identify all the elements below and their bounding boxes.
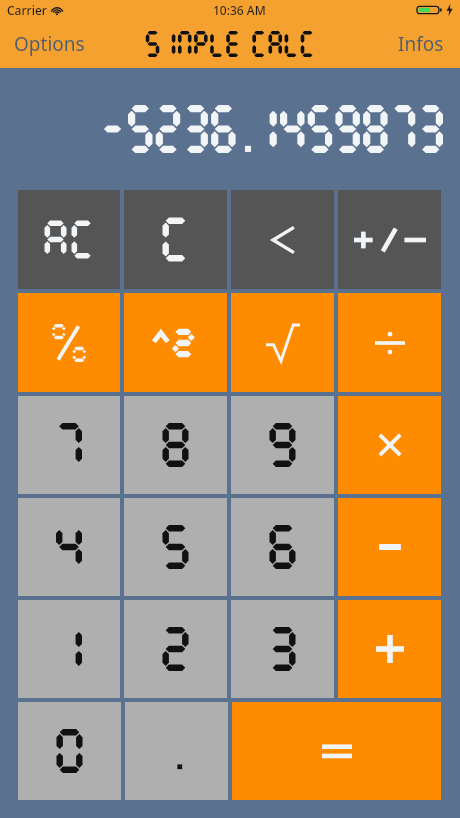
- button[interactable]: C: [124, 190, 227, 289]
- button[interactable]: 5: [124, 498, 227, 596]
- staticText: 10:36 AM: [213, 2, 266, 18]
- button[interactable]: Infos: [398, 31, 444, 57]
- button[interactable]: ÷: [338, 293, 441, 392]
- button[interactable]: 0: [18, 702, 121, 800]
- button[interactable]: -: [338, 498, 441, 596]
- button[interactable]: Options: [14, 31, 85, 57]
- button[interactable]: <: [231, 190, 334, 289]
- button[interactable]: +/-: [338, 190, 441, 289]
- button[interactable]: %: [18, 293, 120, 392]
- staticText: Infos: [398, 31, 444, 57]
- button[interactable]: 1: [18, 600, 120, 698]
- button[interactable]: sqrt: [231, 293, 334, 392]
- button[interactable]: 9: [231, 396, 334, 494]
- button[interactable]: =: [232, 702, 441, 800]
- button[interactable]: 4: [18, 498, 120, 596]
- staticText: Carrier: [7, 2, 47, 18]
- button[interactable]: 6: [231, 498, 334, 596]
- button[interactable]: ,: [125, 702, 228, 800]
- button[interactable]: +: [338, 600, 441, 698]
- button[interactable]: 7: [18, 396, 120, 494]
- button[interactable]: 8: [124, 396, 227, 494]
- button[interactable]: AC: [18, 190, 120, 289]
- button[interactable]: 3: [231, 600, 334, 698]
- button[interactable]: 2: [124, 600, 227, 698]
- staticText: Options: [14, 31, 85, 57]
- button[interactable]: X: [338, 396, 441, 494]
- button[interactable]: ^2: [124, 293, 227, 392]
